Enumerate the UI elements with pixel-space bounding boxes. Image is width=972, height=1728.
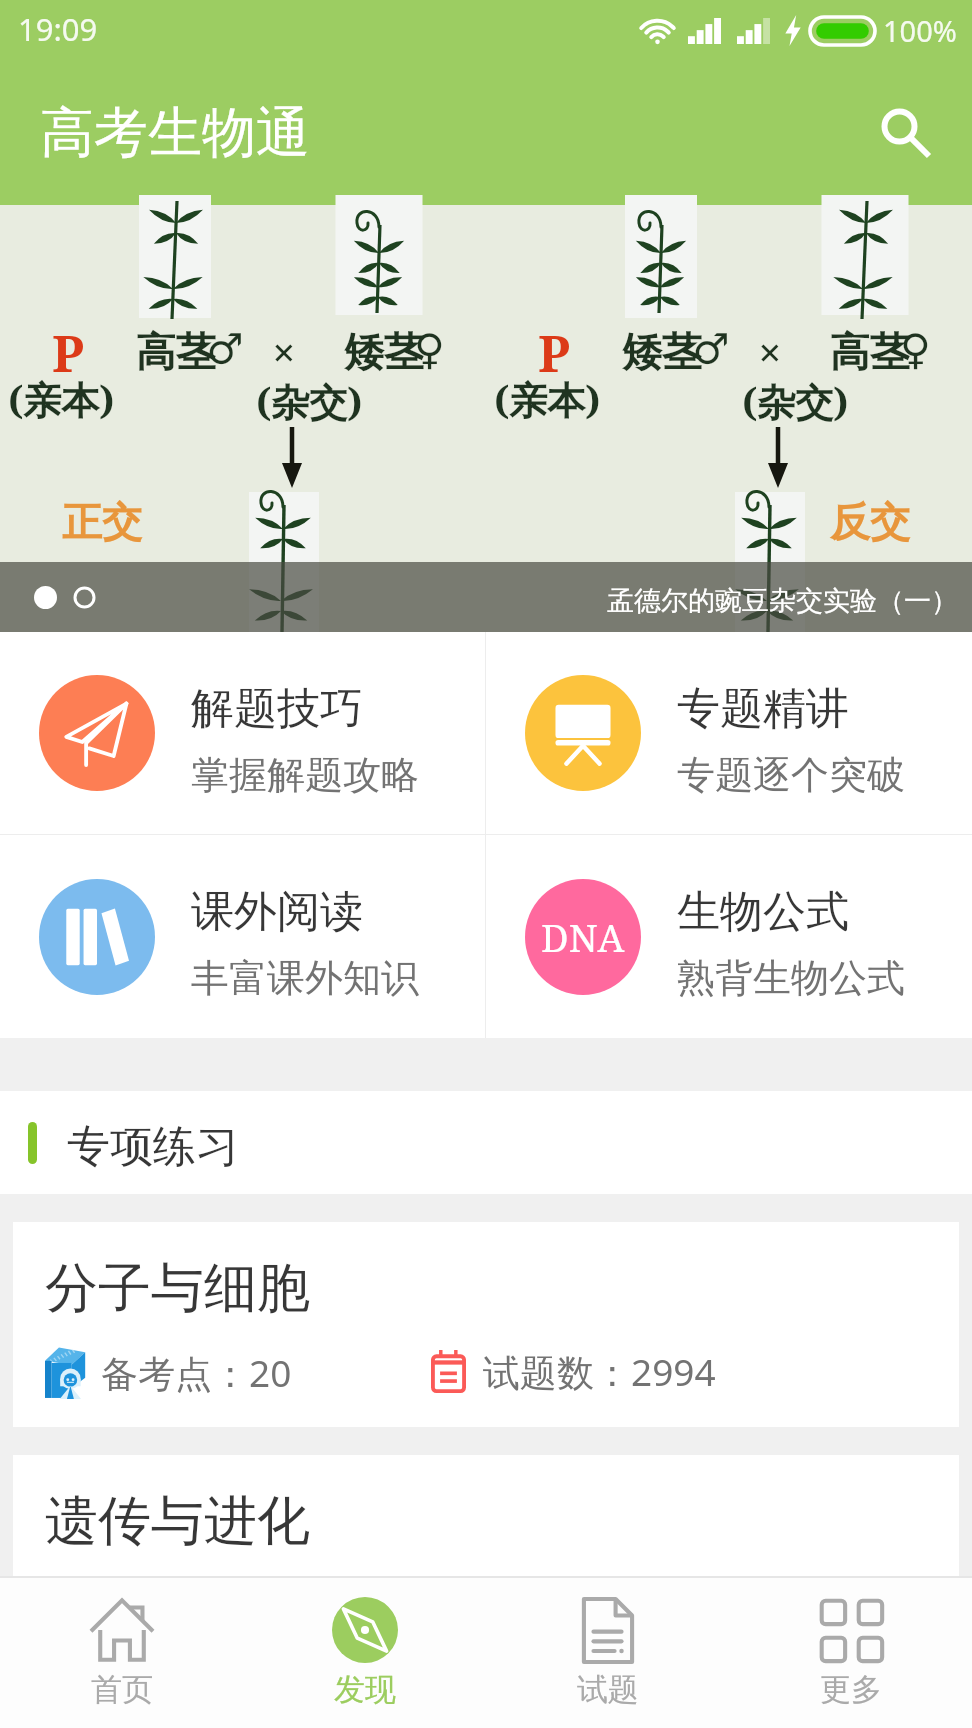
- staticText: ♂: [692, 325, 730, 374]
- staticText: ♀: [900, 325, 931, 374]
- button[interactable]: 课外阅读: [0, 835, 485, 1038]
- staticText: 分子与细胞: [45, 1255, 310, 1322]
- staticText: 首页: [91, 1670, 153, 1709]
- staticText: 高茎: [830, 327, 910, 377]
- staticText: 更多: [820, 1670, 882, 1709]
- staticText: ♀: [414, 325, 445, 374]
- staticText: ×: [758, 323, 782, 380]
- button[interactable]: 分子与细胞: [13, 1222, 959, 1427]
- staticText: 矮茎: [622, 327, 702, 377]
- staticText: (杂交): [256, 375, 363, 427]
- button[interactable]: DNA: [486, 835, 972, 1038]
- staticText: 试题: [577, 1670, 639, 1709]
- staticText: 课外阅读: [191, 885, 363, 939]
- staticText: 高考生物通: [40, 99, 310, 167]
- staticText: 高茎: [136, 327, 216, 377]
- button[interactable]: 解题技巧: [0, 632, 485, 834]
- staticText: ♂: [206, 325, 244, 374]
- staticText: P: [538, 319, 570, 387]
- staticText: 丰富课外知识: [191, 954, 419, 1002]
- staticText: 生物公式: [677, 885, 849, 939]
- staticText: 备考点：20: [101, 1347, 292, 1398]
- staticText: 专题逐个突破: [677, 751, 905, 799]
- staticText: 遗传与进化: [45, 1488, 310, 1555]
- staticText: 发现: [334, 1670, 396, 1709]
- staticText: ×: [272, 323, 296, 380]
- staticText: 正交: [62, 497, 142, 547]
- staticText: (杂交): [742, 375, 849, 427]
- staticText: P: [52, 319, 84, 387]
- staticText: 100%: [883, 11, 957, 50]
- button[interactable]: Search: [858, 85, 954, 181]
- staticText: 19:09: [18, 8, 98, 50]
- staticText: 专项练习: [67, 1120, 239, 1174]
- button[interactable]: 发现: [243, 1578, 486, 1728]
- button[interactable]: 试题: [486, 1578, 729, 1728]
- staticText: 矮茎: [344, 327, 424, 377]
- button[interactable]: 专题精讲: [486, 632, 972, 834]
- staticText: 掌握解题攻略: [191, 751, 419, 799]
- button[interactable]: 遗传与进化: [13, 1455, 959, 1576]
- button[interactable]: 首页: [0, 1578, 243, 1728]
- staticText: 孟德尔的豌豆杂交实验（一）: [607, 584, 958, 618]
- staticText: 试题数：2994: [483, 1346, 716, 1397]
- staticText: (亲本): [8, 373, 115, 425]
- staticText: 熟背生物公式: [677, 954, 905, 1002]
- staticText: DNA: [541, 911, 625, 963]
- staticText: 专题精讲: [677, 682, 849, 736]
- button[interactable]: 更多: [729, 1578, 972, 1728]
- staticText: 解题技巧: [191, 682, 363, 736]
- staticText: (亲本): [494, 373, 601, 425]
- staticText: 反交: [830, 497, 910, 547]
